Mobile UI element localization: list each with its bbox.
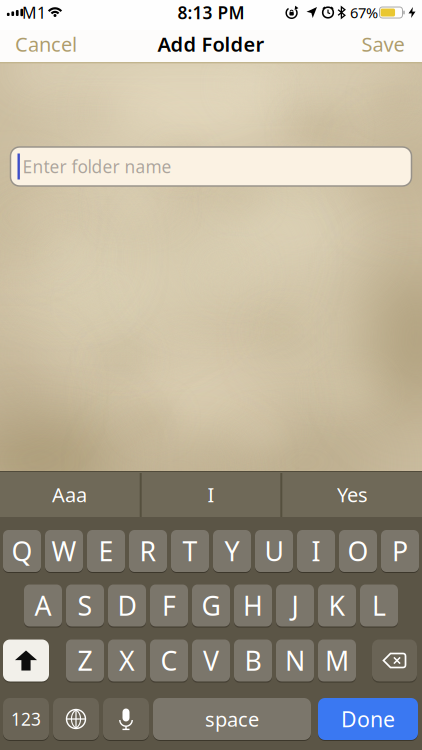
button[interactable]: X xyxy=(108,639,146,681)
button[interactable]: Delete xyxy=(372,639,417,681)
button[interactable]: C xyxy=(150,639,188,681)
staticText: G xyxy=(201,588,220,623)
staticText: F xyxy=(162,588,176,623)
button[interactable]: Dictate xyxy=(103,698,149,740)
staticText: M xyxy=(325,643,349,678)
staticText: 8:13 PM xyxy=(177,1,244,24)
staticText: 123 xyxy=(11,707,41,730)
staticText: Z xyxy=(77,643,92,678)
button[interactable]: F xyxy=(150,584,188,626)
staticText: W xyxy=(51,533,76,569)
staticText: M1 xyxy=(22,2,46,23)
staticText: K xyxy=(328,588,345,623)
staticText: X xyxy=(119,643,135,678)
staticText: Y xyxy=(224,533,239,569)
button[interactable]: K xyxy=(318,584,356,626)
staticText: 67% xyxy=(350,3,378,22)
button[interactable]: M xyxy=(318,639,356,681)
button[interactable]: V xyxy=(192,639,230,681)
staticText: Save xyxy=(361,31,404,57)
button[interactable]: Y xyxy=(213,530,251,572)
button[interactable]: T xyxy=(171,530,209,572)
button[interactable]: Shift xyxy=(3,639,49,681)
button[interactable]: Save xyxy=(353,25,412,63)
button[interactable]: 123 xyxy=(3,698,49,740)
staticText: H xyxy=(243,588,263,623)
button[interactable]: G xyxy=(192,584,230,626)
staticText: Q xyxy=(11,533,32,569)
staticText: T xyxy=(182,533,197,569)
staticText: R xyxy=(139,533,156,569)
staticText: Yes xyxy=(337,481,368,508)
staticText: O xyxy=(347,533,368,569)
staticText: U xyxy=(264,533,283,569)
button[interactable]: Next keyboard xyxy=(53,698,99,740)
staticText: I xyxy=(207,481,214,508)
button[interactable]: E xyxy=(87,530,125,572)
button[interactable]: I xyxy=(142,472,279,517)
button[interactable]: S xyxy=(66,584,104,626)
staticText: Aaa xyxy=(52,481,87,508)
button[interactable]: Yes xyxy=(284,472,421,517)
button[interactable]: H xyxy=(234,584,272,626)
staticText: Add Folder xyxy=(157,31,264,57)
button[interactable]: Enter folder name xyxy=(10,147,411,186)
button[interactable]: P xyxy=(381,530,419,572)
staticText: Enter folder name xyxy=(22,155,171,178)
staticText: Cancel xyxy=(15,31,77,57)
staticText: A xyxy=(34,588,51,623)
button[interactable]: W xyxy=(45,530,83,572)
button[interactable]: N xyxy=(276,639,314,681)
staticText: V xyxy=(203,643,219,678)
staticText: J xyxy=(291,588,298,623)
staticText: N xyxy=(285,643,305,678)
staticText: Done xyxy=(341,705,395,733)
staticText: I xyxy=(311,533,320,569)
staticText: space xyxy=(205,706,259,732)
button[interactable]: B xyxy=(234,639,272,681)
button[interactable]: Q xyxy=(3,530,41,572)
button[interactable]: A xyxy=(24,584,62,626)
staticText: C xyxy=(160,643,177,678)
staticText: D xyxy=(117,588,136,623)
staticText: P xyxy=(392,533,408,569)
button[interactable]: J xyxy=(276,584,314,626)
staticText: E xyxy=(98,533,113,569)
button[interactable]: D xyxy=(108,584,146,626)
button[interactable]: L xyxy=(360,584,398,626)
button[interactable]: U xyxy=(255,530,293,572)
staticText: S xyxy=(77,588,92,623)
staticText: L xyxy=(372,588,386,623)
button[interactable]: Aaa xyxy=(1,472,138,517)
staticText: B xyxy=(244,643,261,678)
button[interactable]: O xyxy=(339,530,377,572)
button[interactable]: space xyxy=(153,698,311,740)
button[interactable]: Cancel xyxy=(7,25,85,63)
button[interactable]: Z xyxy=(66,639,104,681)
button[interactable]: I xyxy=(297,530,335,572)
button[interactable]: Done xyxy=(318,698,418,740)
button[interactable]: R xyxy=(129,530,167,572)
